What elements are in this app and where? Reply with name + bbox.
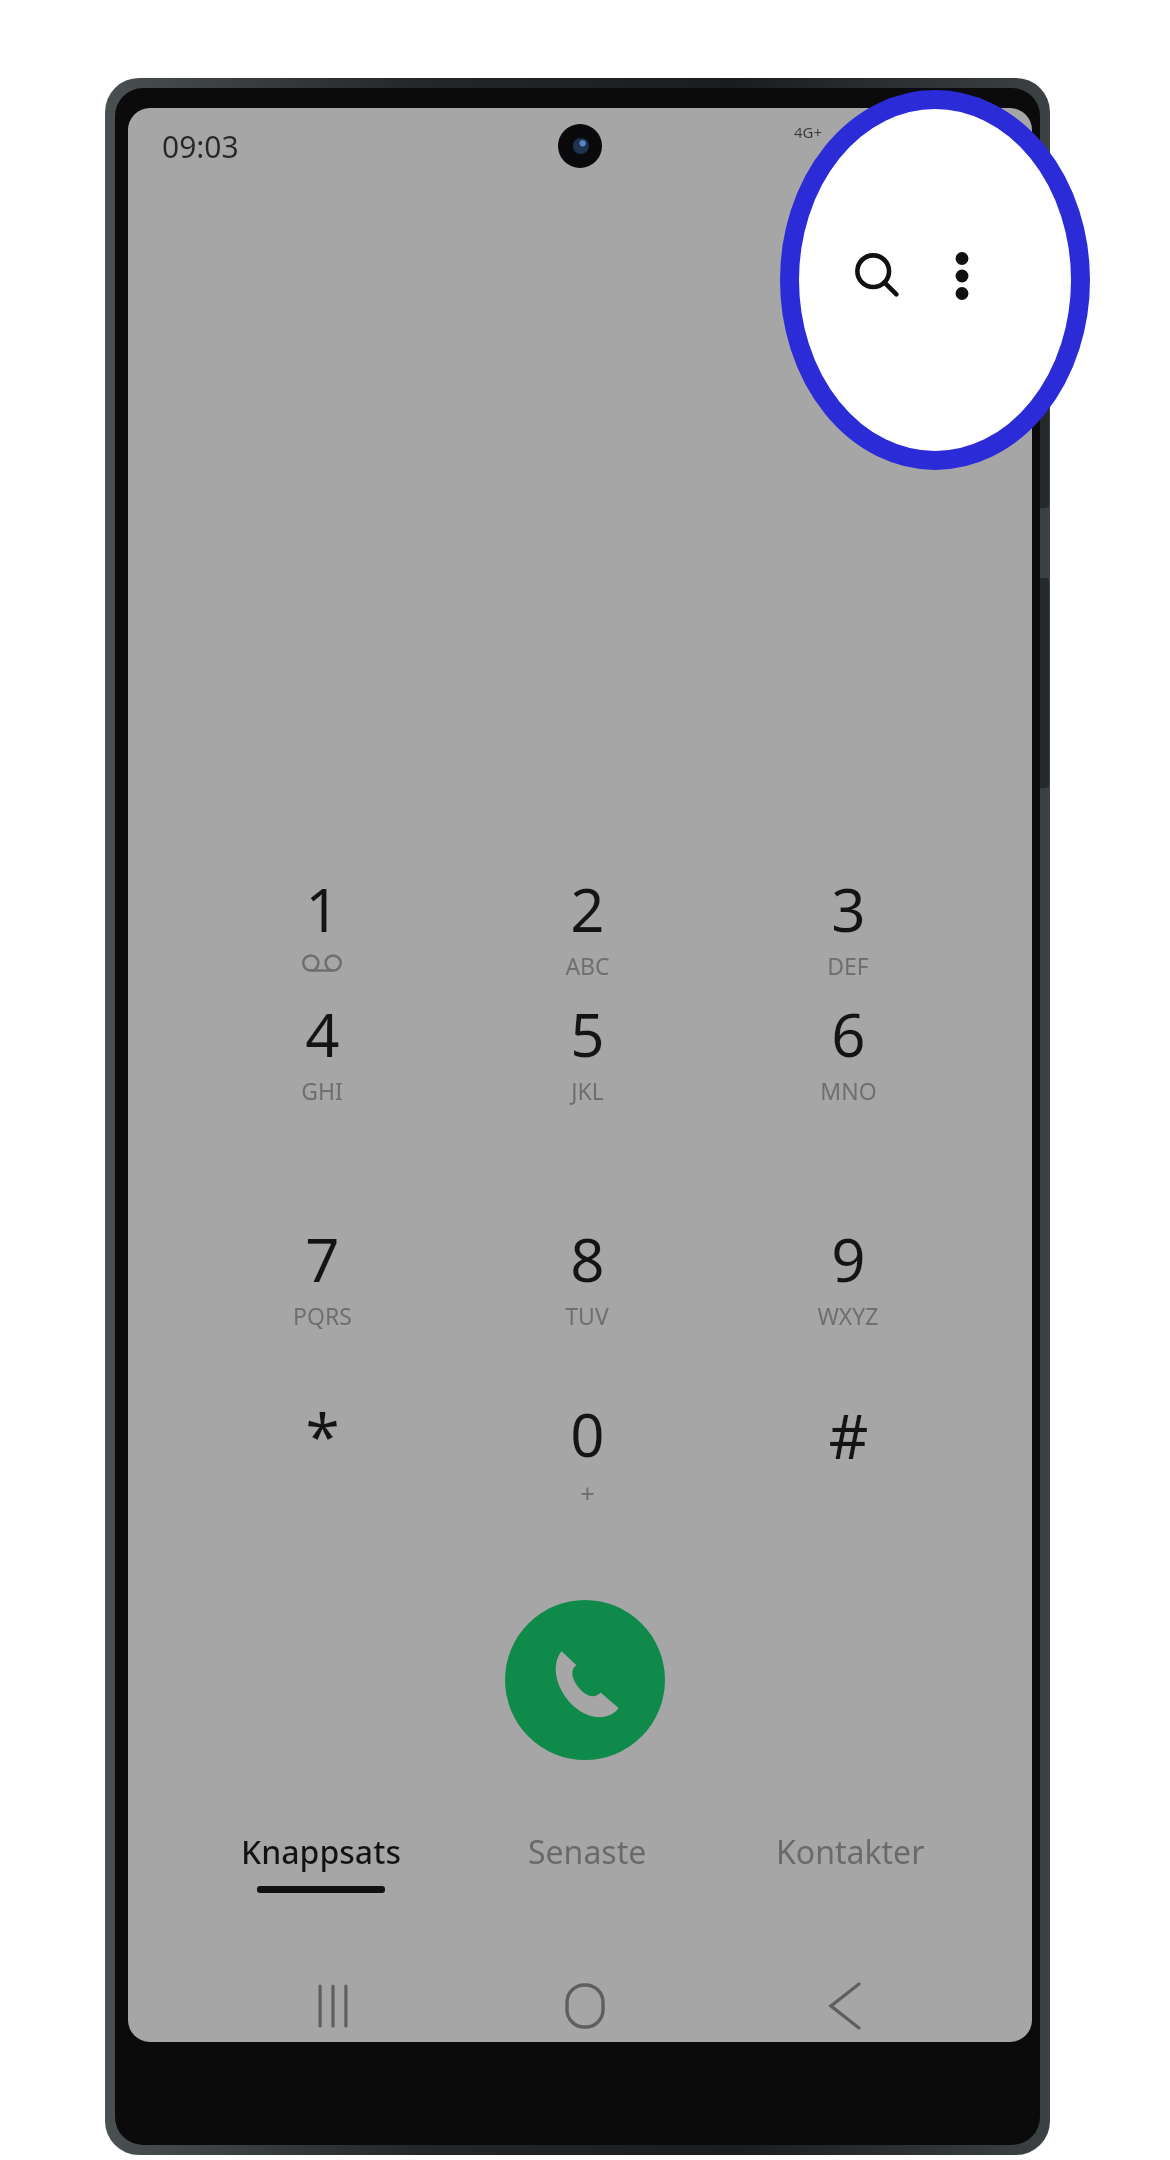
button[interactable]: Senaste [452,1830,722,1940]
staticText: 5 [570,993,605,1075]
button[interactable]: 5 [492,993,682,1143]
button[interactable]: Back [785,1946,905,2042]
staticText: Senaste [528,1830,647,1874]
staticText: 09:03 [162,126,239,167]
staticText: Knappsats [241,1830,401,1874]
button[interactable]: Recent apps [273,1946,393,2042]
staticText: MNO [820,1075,877,1106]
button[interactable]: 7 [227,1218,417,1368]
button[interactable]: # [753,1393,943,1543]
button[interactable]: Home [525,1946,645,2042]
staticText: TUV [565,1300,609,1331]
button[interactable]: More options [918,232,1006,320]
staticText: Kontakter [776,1830,925,1874]
staticText: 100% [868,122,947,164]
staticText: WXYZ [817,1300,879,1331]
staticText: 2 [570,868,605,950]
staticText: GHI [301,1075,343,1106]
staticText: * [305,1393,340,1477]
button[interactable]: 8 [492,1218,682,1368]
button[interactable]: 2 [492,868,682,1018]
staticText: 1 [305,868,340,950]
staticText: + [580,1475,595,1510]
button[interactable]: Knappsats [186,1830,456,1940]
staticText: 6 [831,993,866,1075]
staticText: PQRS [293,1300,352,1331]
staticText: 0 [570,1393,605,1475]
button[interactable]: 3 [753,868,943,1018]
button[interactable]: Kontakter [715,1830,985,1940]
staticText: 4 [305,993,340,1075]
staticText: JKL [571,1075,604,1106]
staticText: 9 [831,1218,866,1300]
button[interactable]: 1 [227,868,417,1018]
staticText: 8 [570,1218,605,1300]
button[interactable]: 9 [753,1218,943,1368]
staticText: ABC [565,950,610,981]
staticText: DEF [827,950,869,981]
button[interactable]: Search [834,232,922,320]
button[interactable]: 4 [227,993,417,1143]
button[interactable]: * [227,1393,417,1543]
button[interactable]: 6 [753,993,943,1143]
button[interactable]: Call [505,1600,665,1760]
staticText: 4G+ [794,122,823,142]
staticText: # [828,1393,869,1477]
button[interactable]: 0 [492,1393,682,1543]
staticText: 3 [831,868,866,950]
staticText: 7 [305,1218,340,1300]
